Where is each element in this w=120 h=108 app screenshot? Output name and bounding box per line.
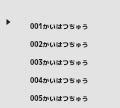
staticText: 001かいはつちゅう [30, 22, 89, 31]
button[interactable]: 002かいはつちゅう [0, 35, 120, 53]
button[interactable]: 001かいはつちゅう [0, 17, 120, 35]
staticText: 002かいはつちゅう [30, 40, 89, 49]
button[interactable]: 005かいはつちゅう [0, 89, 120, 107]
button[interactable]: 003かいはつちゅう [0, 53, 120, 71]
staticText: 003かいはつちゅう [30, 58, 89, 67]
button[interactable]: Select [6, 19, 11, 25]
button[interactable]: 004かいはつちゅう [0, 71, 120, 89]
staticText: 004かいはつちゅう [30, 76, 89, 85]
staticText: 005かいはつちゅう [30, 94, 89, 103]
